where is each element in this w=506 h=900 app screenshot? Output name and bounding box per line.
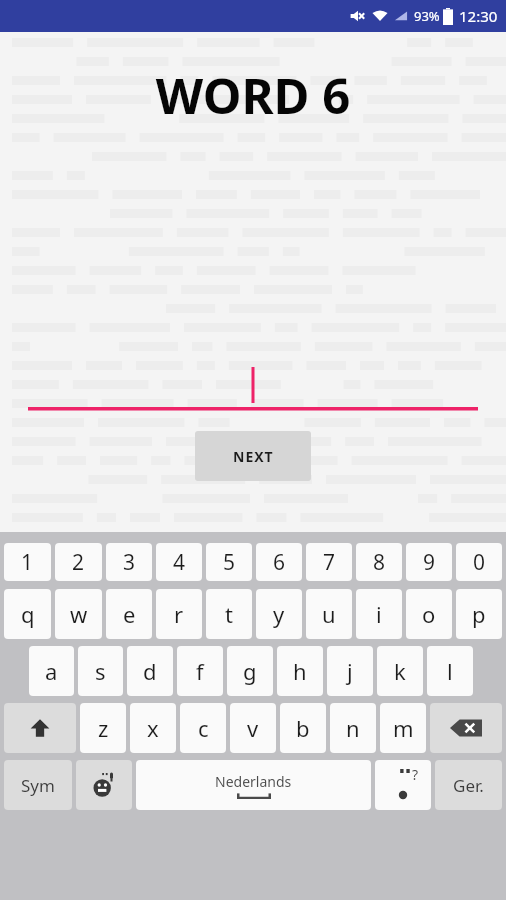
button[interactable]: Sym xyxy=(4,760,72,810)
button[interactable]: z xyxy=(80,703,126,753)
staticText: x xyxy=(147,713,159,743)
staticText: 3 xyxy=(123,548,136,577)
other: Wi-Fi xyxy=(371,7,389,25)
staticText: j xyxy=(347,656,353,686)
button[interactable]: i xyxy=(356,589,402,639)
staticText: z xyxy=(98,713,109,743)
other: Signal xyxy=(393,8,409,24)
staticText: w xyxy=(70,599,88,629)
staticText: b xyxy=(296,713,310,743)
staticText: g xyxy=(243,656,257,686)
staticText: l xyxy=(447,656,453,686)
staticText: d xyxy=(143,656,157,686)
staticText: r xyxy=(174,599,184,629)
button[interactable]: x xyxy=(130,703,176,753)
button[interactable]: w xyxy=(55,589,102,639)
button[interactable]: o xyxy=(406,589,452,639)
staticText: t xyxy=(225,599,233,629)
staticText: a xyxy=(45,656,58,686)
button[interactable]: l xyxy=(427,646,473,696)
staticText: NEXT xyxy=(233,447,274,466)
button[interactable]: t xyxy=(206,589,252,639)
button[interactable]: p xyxy=(456,589,502,639)
staticText: 1 xyxy=(21,548,34,577)
button[interactable]: Nederlands xyxy=(136,760,371,810)
button[interactable]: g xyxy=(227,646,273,696)
button[interactable]: q xyxy=(4,589,51,639)
other: Battery xyxy=(443,8,453,25)
staticText: Ger. xyxy=(453,774,484,797)
button[interactable]: NEXT xyxy=(195,431,311,481)
staticText: v xyxy=(247,713,259,743)
staticText: 12:30 xyxy=(459,6,498,26)
staticText: 93% xyxy=(414,7,440,25)
staticText: y xyxy=(273,599,285,629)
button[interactable]: y xyxy=(256,589,302,639)
staticText: u xyxy=(322,599,336,629)
staticText: n xyxy=(346,713,360,743)
button[interactable]: c xyxy=(180,703,226,753)
button[interactable]: 1 xyxy=(4,543,51,581)
staticText: i xyxy=(376,599,382,629)
button[interactable] xyxy=(28,359,478,419)
staticText: Sym xyxy=(21,774,55,797)
button[interactable]: m xyxy=(380,703,426,753)
button[interactable]: s xyxy=(78,646,123,696)
button[interactable]: Ger. xyxy=(435,760,502,810)
staticText: p xyxy=(472,599,486,629)
button[interactable]: 2 xyxy=(55,543,102,581)
button[interactable]: Emoji and voice input xyxy=(76,760,132,810)
button[interactable]: n xyxy=(330,703,376,753)
staticText: f xyxy=(196,656,204,686)
button[interactable]: 6 xyxy=(256,543,302,581)
staticText: 4 xyxy=(173,548,186,577)
other: Mute xyxy=(347,6,367,26)
staticText: 0 xyxy=(473,548,486,577)
button[interactable]: 7 xyxy=(306,543,352,581)
button[interactable]: Period xyxy=(375,760,431,810)
button[interactable]: 9 xyxy=(406,543,452,581)
staticText: ? xyxy=(412,765,419,784)
staticText: e xyxy=(123,599,136,629)
staticText: m xyxy=(393,713,414,743)
button[interactable]: Shift xyxy=(4,703,76,753)
button[interactable]: a xyxy=(29,646,74,696)
button[interactable]: Backspace xyxy=(430,703,502,753)
button[interactable]: 4 xyxy=(156,543,202,581)
staticText: Nederlands xyxy=(215,772,292,791)
button[interactable]: h xyxy=(277,646,323,696)
button[interactable]: 8 xyxy=(356,543,402,581)
staticText: q xyxy=(21,599,35,629)
staticText: 5 xyxy=(223,548,236,577)
button[interactable]: k xyxy=(377,646,423,696)
staticText: c xyxy=(198,713,209,743)
button[interactable]: d xyxy=(127,646,173,696)
staticText: s xyxy=(95,656,106,686)
staticText: o xyxy=(422,599,436,629)
button[interactable]: u xyxy=(306,589,352,639)
staticText: h xyxy=(293,656,307,686)
staticText: 2 xyxy=(72,548,85,577)
staticText: 9 xyxy=(423,548,436,577)
button[interactable]: j xyxy=(327,646,373,696)
button[interactable]: v xyxy=(230,703,276,753)
staticText: 6 xyxy=(273,548,286,577)
staticText: k xyxy=(394,656,406,686)
staticText: 8 xyxy=(373,548,386,577)
button[interactable]: 5 xyxy=(206,543,252,581)
button[interactable]: 3 xyxy=(106,543,152,581)
staticText: WORD 6 xyxy=(0,62,506,129)
button[interactable]: b xyxy=(280,703,326,753)
staticText: 7 xyxy=(323,548,336,577)
button[interactable]: f xyxy=(177,646,223,696)
button[interactable]: 0 xyxy=(456,543,502,581)
button[interactable]: e xyxy=(106,589,152,639)
button[interactable]: r xyxy=(156,589,202,639)
